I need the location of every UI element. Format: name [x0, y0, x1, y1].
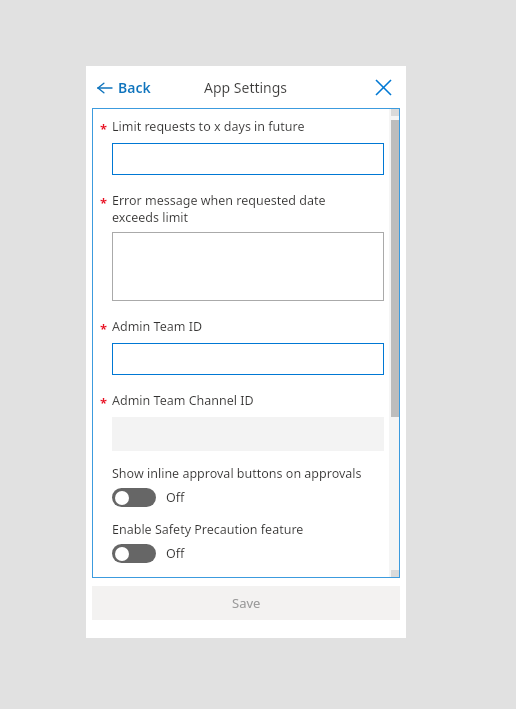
staticText: * [100, 194, 108, 212]
button[interactable]: Off [112, 544, 185, 563]
staticText: Off [166, 489, 185, 506]
staticText: Save [232, 594, 261, 612]
staticText: * [100, 320, 108, 338]
staticText: Enable Safety Precaution feature [112, 521, 304, 538]
button[interactable]: Text field [112, 343, 384, 375]
button[interactable]: Close [370, 74, 396, 100]
staticText: * [100, 120, 108, 138]
staticText: Error message when requested date exceed… [112, 192, 326, 225]
button[interactable]: Off [112, 488, 185, 507]
staticText: Off [166, 545, 185, 562]
button[interactable]: Save [92, 586, 400, 620]
staticText: Limit requests to x days in future [112, 118, 305, 135]
staticText: App Settings [204, 78, 288, 97]
staticText: * [100, 394, 108, 412]
staticText: Admin Team ID [112, 318, 203, 335]
staticText: Back [118, 78, 151, 97]
button[interactable]: Text field [112, 232, 384, 301]
button[interactable]: Text field [112, 143, 384, 175]
staticText: Show inline approval buttons on approval… [112, 465, 362, 482]
button[interactable]: Back [94, 74, 155, 101]
staticText: Admin Team Channel ID [112, 392, 254, 409]
